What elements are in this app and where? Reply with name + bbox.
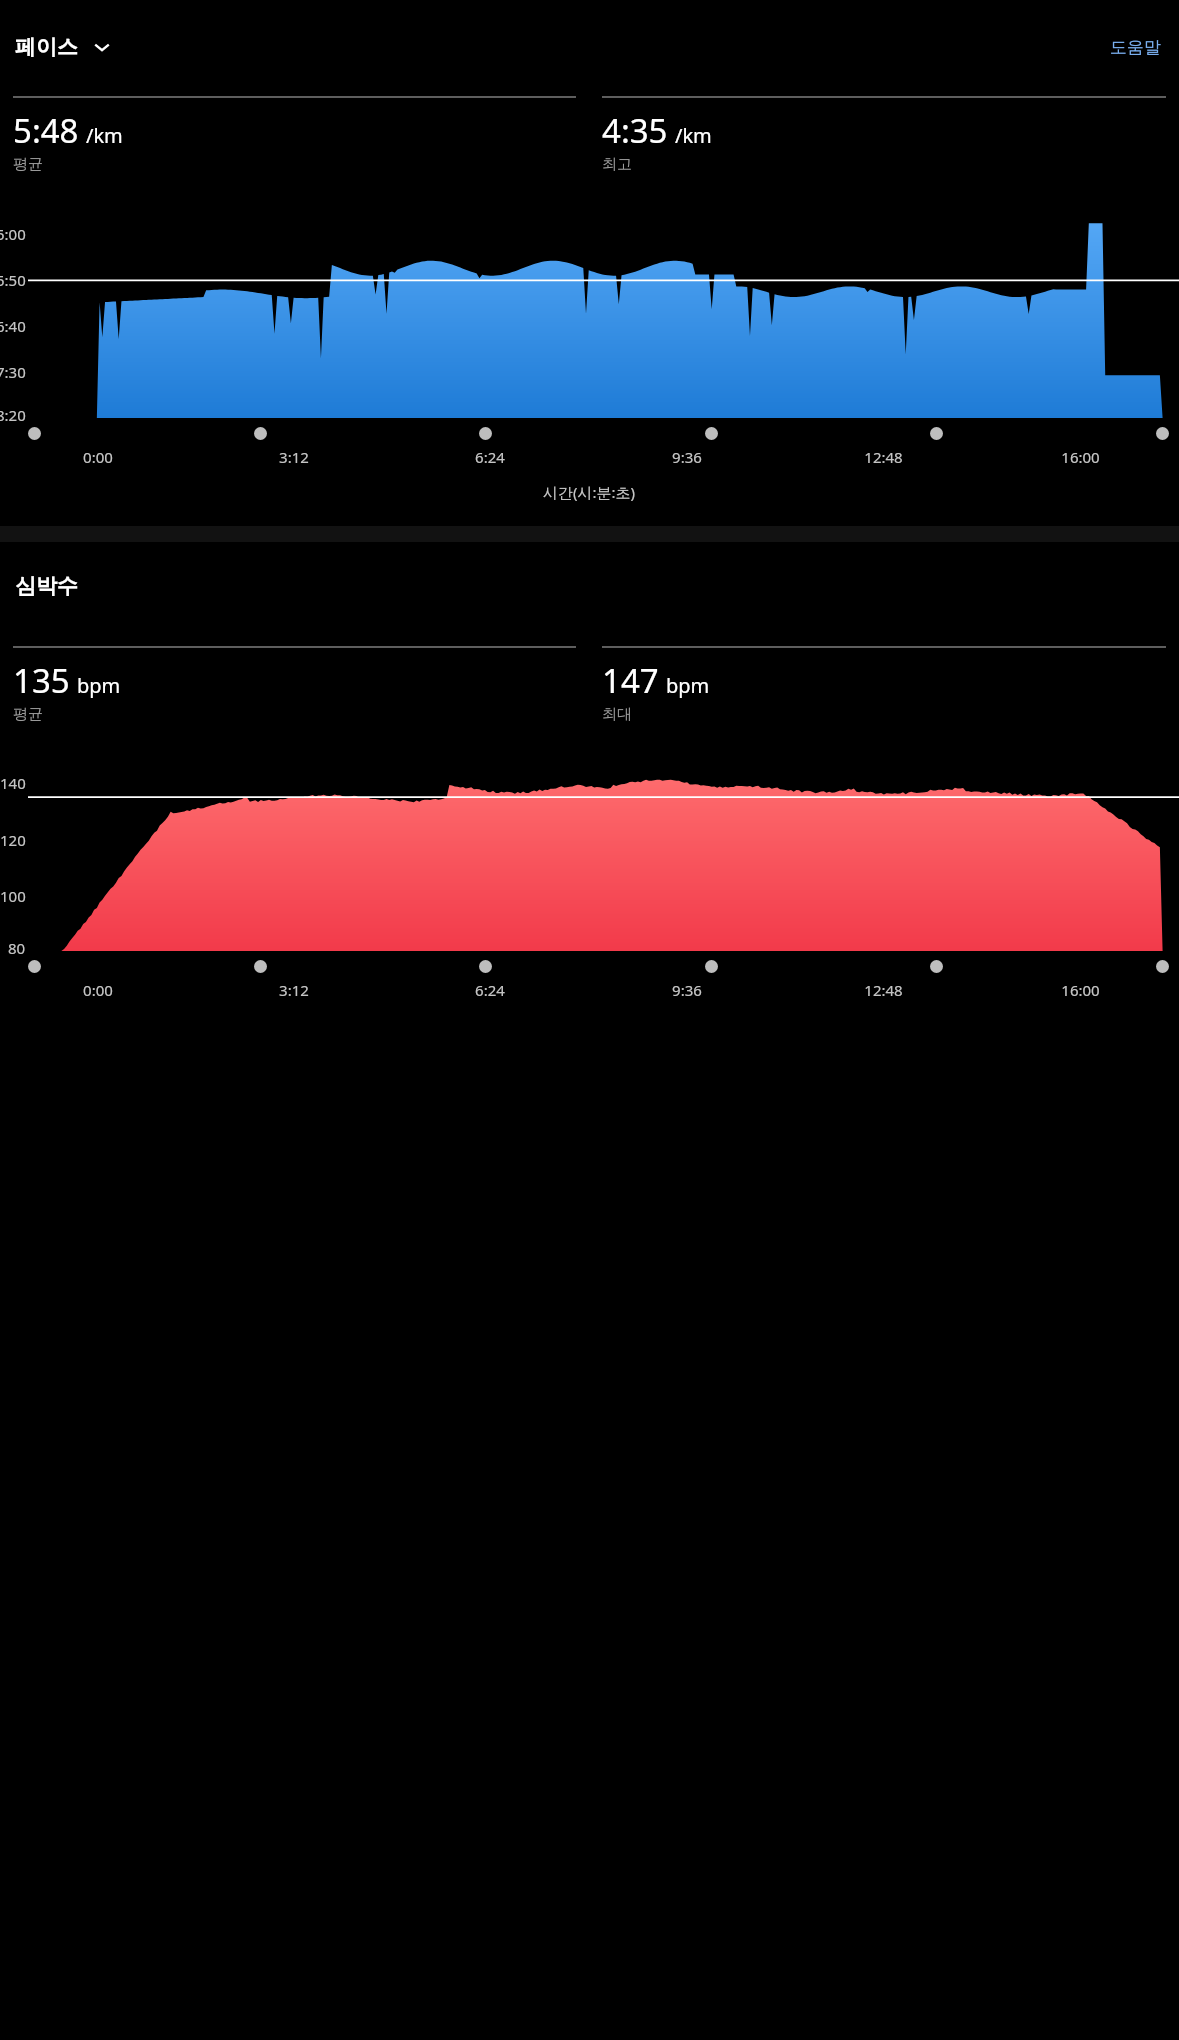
staticText: 100: [0, 886, 26, 906]
staticText: 도움말: [1110, 37, 1161, 58]
staticText: 4:35: [602, 108, 668, 153]
staticText: 120: [0, 830, 26, 850]
staticText: 시간(시:분:초): [543, 482, 636, 502]
staticText: 12:48: [864, 980, 903, 1000]
staticText: 3:12: [279, 447, 309, 467]
staticText: /km: [86, 122, 123, 149]
button[interactable]: 도움말: [1106, 30, 1165, 65]
staticText: 5:50: [0, 270, 26, 290]
staticText: 최대: [602, 705, 632, 724]
staticText: 135: [13, 658, 70, 703]
staticText: 80: [8, 938, 26, 958]
staticText: 9:36: [672, 447, 702, 467]
staticText: 12:48: [864, 447, 903, 467]
staticText: 147: [602, 658, 659, 703]
button[interactable]: 페이스: [12, 27, 115, 67]
staticText: 최고: [602, 155, 632, 174]
button[interactable]: 135: [13, 646, 576, 724]
staticText: 16:00: [1061, 447, 1100, 467]
button[interactable]: 5:48: [13, 96, 576, 174]
staticText: bpm: [77, 672, 121, 699]
staticText: 6:24: [475, 447, 505, 467]
staticText: 0:00: [83, 447, 113, 467]
staticText: 9:36: [672, 980, 702, 1000]
staticText: 7:30: [0, 362, 26, 382]
staticText: 6:24: [475, 980, 505, 1000]
staticText: 평균: [13, 155, 43, 174]
staticText: 140: [0, 773, 26, 793]
staticText: 16:00: [1061, 980, 1100, 1000]
staticText: 3:12: [279, 980, 309, 1000]
staticText: 6:40: [0, 316, 26, 336]
staticText: 평균: [13, 705, 43, 724]
staticText: 심박수: [15, 573, 78, 599]
staticText: 5:48: [13, 108, 79, 153]
staticText: bpm: [666, 672, 710, 699]
staticText: 0:00: [83, 980, 113, 1000]
button[interactable]: 147: [602, 646, 1166, 724]
staticText: 8:20: [0, 405, 26, 425]
staticText: 5:00: [0, 224, 26, 244]
button[interactable]: 4:35: [602, 96, 1166, 174]
staticText: 페이스: [15, 34, 78, 60]
staticText: /km: [675, 122, 712, 149]
